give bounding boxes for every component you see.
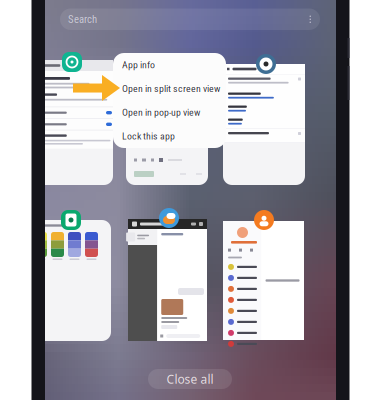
staticText: Lock this app — [122, 130, 175, 142]
button[interactable]: Close all — [148, 369, 232, 389]
staticText: Open in split screen view — [122, 83, 220, 94]
button[interactable]: Search — [60, 8, 320, 30]
button[interactable]: Open in split screen view — [113, 77, 226, 101]
staticText: App info — [122, 59, 155, 71]
button[interactable]: Lock this app — [113, 124, 226, 148]
staticText: Close all — [166, 371, 213, 387]
button[interactable]: Open in pop-up view — [113, 100, 226, 124]
button[interactable]: App info — [113, 53, 226, 77]
staticText: Search — [68, 13, 97, 25]
staticText: Open in pop-up view — [122, 107, 200, 118]
